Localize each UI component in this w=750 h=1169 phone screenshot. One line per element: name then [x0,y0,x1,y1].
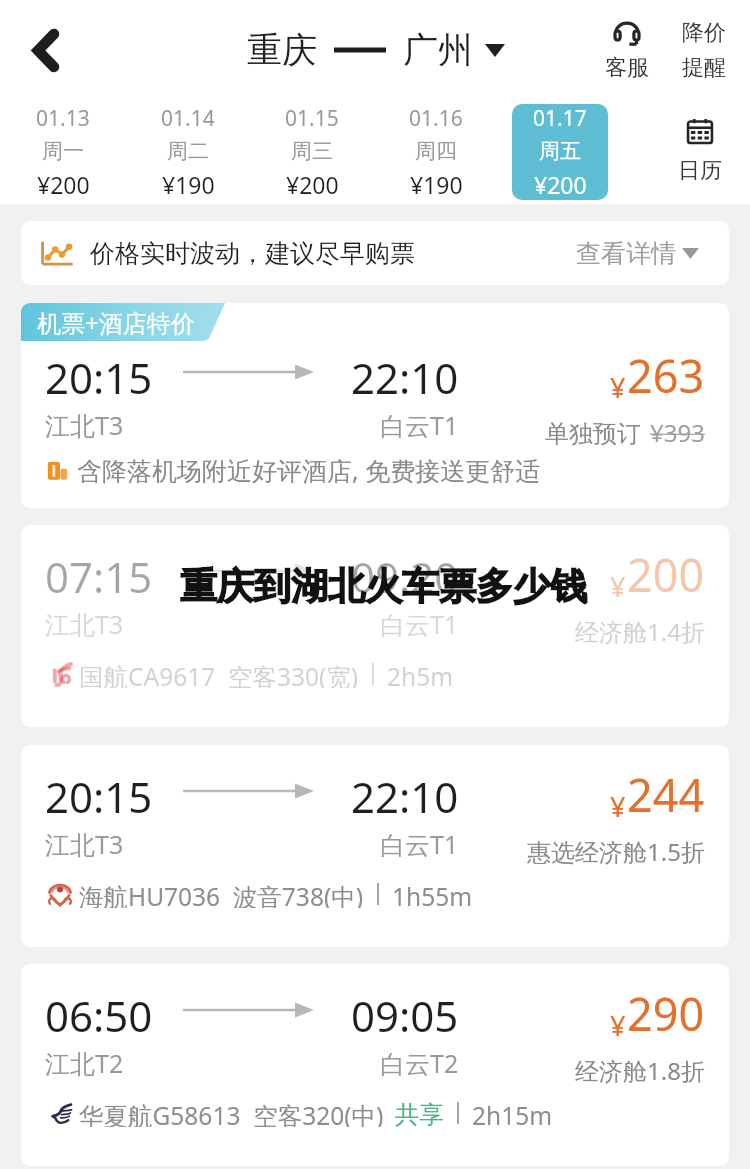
staticText: 单独预订 [545,419,641,449]
staticText: 2h5m [387,660,454,688]
staticText: 客服 [605,54,649,82]
staticText: 200 [627,544,705,605]
staticText: 290 [627,983,705,1044]
staticText: ¥200 [286,169,339,200]
staticText: ¥ [610,369,626,406]
staticText: 降价 [682,19,726,47]
staticText: ¥200 [37,169,90,200]
staticText: 白云T2 [380,1046,459,1080]
button[interactable]: 机票+酒店特价 [21,303,729,508]
staticText: 海航HU7036 波音738(中) [79,880,364,908]
staticText: 国航CA9617 空客330(宽) [79,660,359,688]
button[interactable]: 01.17 [512,104,608,200]
staticText: 06:50 [45,987,153,1044]
button[interactable]: 降价 [666,0,742,100]
staticText: 白云T1 [380,827,459,861]
staticText: 09:20 [351,548,459,605]
staticText: 01.13 [36,104,90,133]
button[interactable]: 客服 [588,0,666,100]
staticText: 重庆到湖北火车票多少钱 [180,563,587,610]
staticText: 机票+酒店特价 [37,306,195,339]
staticText: 01.14 [161,104,215,133]
staticText: 白云T1 [380,607,459,641]
staticText: ¥200 [534,169,587,200]
staticText: 日历 [678,157,722,185]
staticText: 01.16 [409,104,463,133]
staticText: 经济舱1.8折 [575,1054,705,1087]
staticText: 白云T1 [380,408,459,442]
staticText: 江北T3 [45,408,124,442]
staticText: 重庆 [247,28,317,72]
staticText: 提醒 [682,54,726,82]
staticText: 华夏航G58613 空客320(中) [79,1099,384,1127]
button[interactable]: 01.13 [15,104,111,200]
staticText: ¥ [610,1007,626,1044]
staticText: 01.15 [285,104,339,133]
staticText: 江北T3 [45,827,124,861]
button[interactable]: 01.15 [264,104,360,200]
staticText: 江北T3 [45,607,124,641]
staticText: 07:15 [45,548,153,605]
staticText: 1h55m [392,880,473,908]
staticText: 22:10 [351,768,459,825]
button[interactable]: 01.16 [388,104,484,200]
button[interactable]: 价格实时波动，建议尽早购票 [21,221,729,285]
staticText: 22:10 [351,349,459,406]
staticText: 01.17 [533,104,587,133]
staticText: 江北T2 [45,1046,124,1080]
staticText: 263 [627,345,705,406]
staticText: ¥ [610,788,626,825]
staticText: 共享 [395,1099,444,1127]
staticText: 周四 [415,138,457,164]
staticText: 244 [627,764,705,825]
staticText: 广州 [403,28,473,72]
staticText: 经济舱1.4折 [575,615,705,648]
staticText: 周一 [42,138,84,164]
staticText: 09:05 [351,987,459,1044]
staticText: 2h15m [472,1099,553,1127]
staticText: 价格实时波动，建议尽早购票 [90,238,415,269]
staticText: 周二 [167,138,209,164]
staticText: 查看详情 [576,238,676,269]
staticText: 含降落机场附近好评酒店, 免费接送更舒适 [77,453,541,487]
button[interactable]: 07:15 [21,525,729,727]
button[interactable]: 日历 [636,100,750,204]
staticText: ¥190 [162,169,215,200]
staticText: ¥190 [410,169,463,200]
button[interactable]: 20:15 [21,745,729,947]
staticText: ¥ [610,568,626,605]
staticText: 惠选经济舱1.5折 [527,835,705,868]
staticText: 20:15 [45,768,153,825]
staticText: 周三 [291,138,333,164]
button[interactable]: 01.14 [140,104,236,200]
staticText: 周五 [539,138,581,164]
button[interactable]: Back [0,0,92,100]
staticText: 20:15 [45,349,153,406]
button[interactable]: 06:50 [21,964,729,1166]
staticText: ¥393 [650,416,705,449]
